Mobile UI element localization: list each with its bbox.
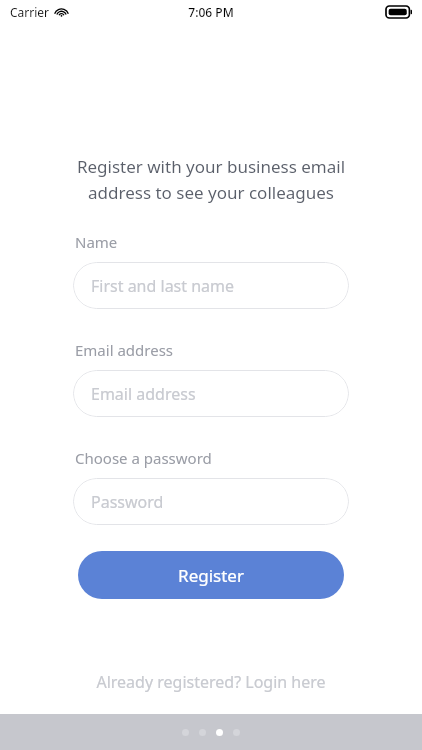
staticText: Already registered? Login here bbox=[96, 671, 326, 693]
button[interactable]: First and last name bbox=[73, 262, 349, 309]
staticText: Carrier bbox=[10, 4, 50, 20]
staticText: Email address bbox=[91, 383, 196, 405]
staticText: Password bbox=[91, 491, 164, 513]
button[interactable]: Password bbox=[73, 478, 349, 525]
button[interactable]: Email address bbox=[73, 370, 349, 417]
staticText: Choose a password bbox=[75, 448, 212, 468]
staticText: First and last name bbox=[91, 275, 235, 297]
staticText: Register bbox=[178, 564, 244, 587]
button[interactable]: Already registered? Login here bbox=[0, 663, 422, 701]
button[interactable]: Register bbox=[78, 551, 344, 599]
staticText: 7:06 PM bbox=[188, 4, 234, 20]
staticText: Email address bbox=[75, 340, 174, 360]
staticText: Name bbox=[75, 232, 118, 252]
staticText: Register with your business email addres… bbox=[40, 155, 382, 204]
